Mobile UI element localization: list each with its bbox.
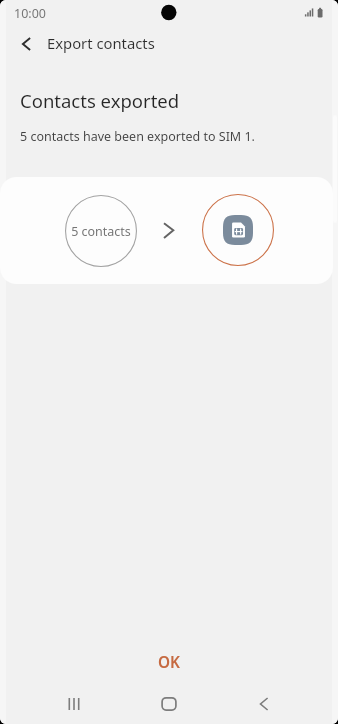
staticText: Contacts exported	[20, 88, 180, 113]
staticText: 10:00	[14, 5, 46, 22]
button[interactable]: OK	[0, 645, 338, 679]
button[interactable]: Home	[149, 684, 189, 724]
button[interactable]: Back	[244, 684, 284, 724]
staticText: OK	[158, 652, 180, 673]
staticText: Export contacts	[47, 33, 155, 53]
button[interactable]: Navigate up	[7, 25, 44, 62]
staticText: 5 contacts	[71, 223, 131, 240]
button[interactable]: Recents	[54, 684, 94, 724]
staticText: 5 contacts have been exported to SIM 1.	[20, 128, 255, 145]
